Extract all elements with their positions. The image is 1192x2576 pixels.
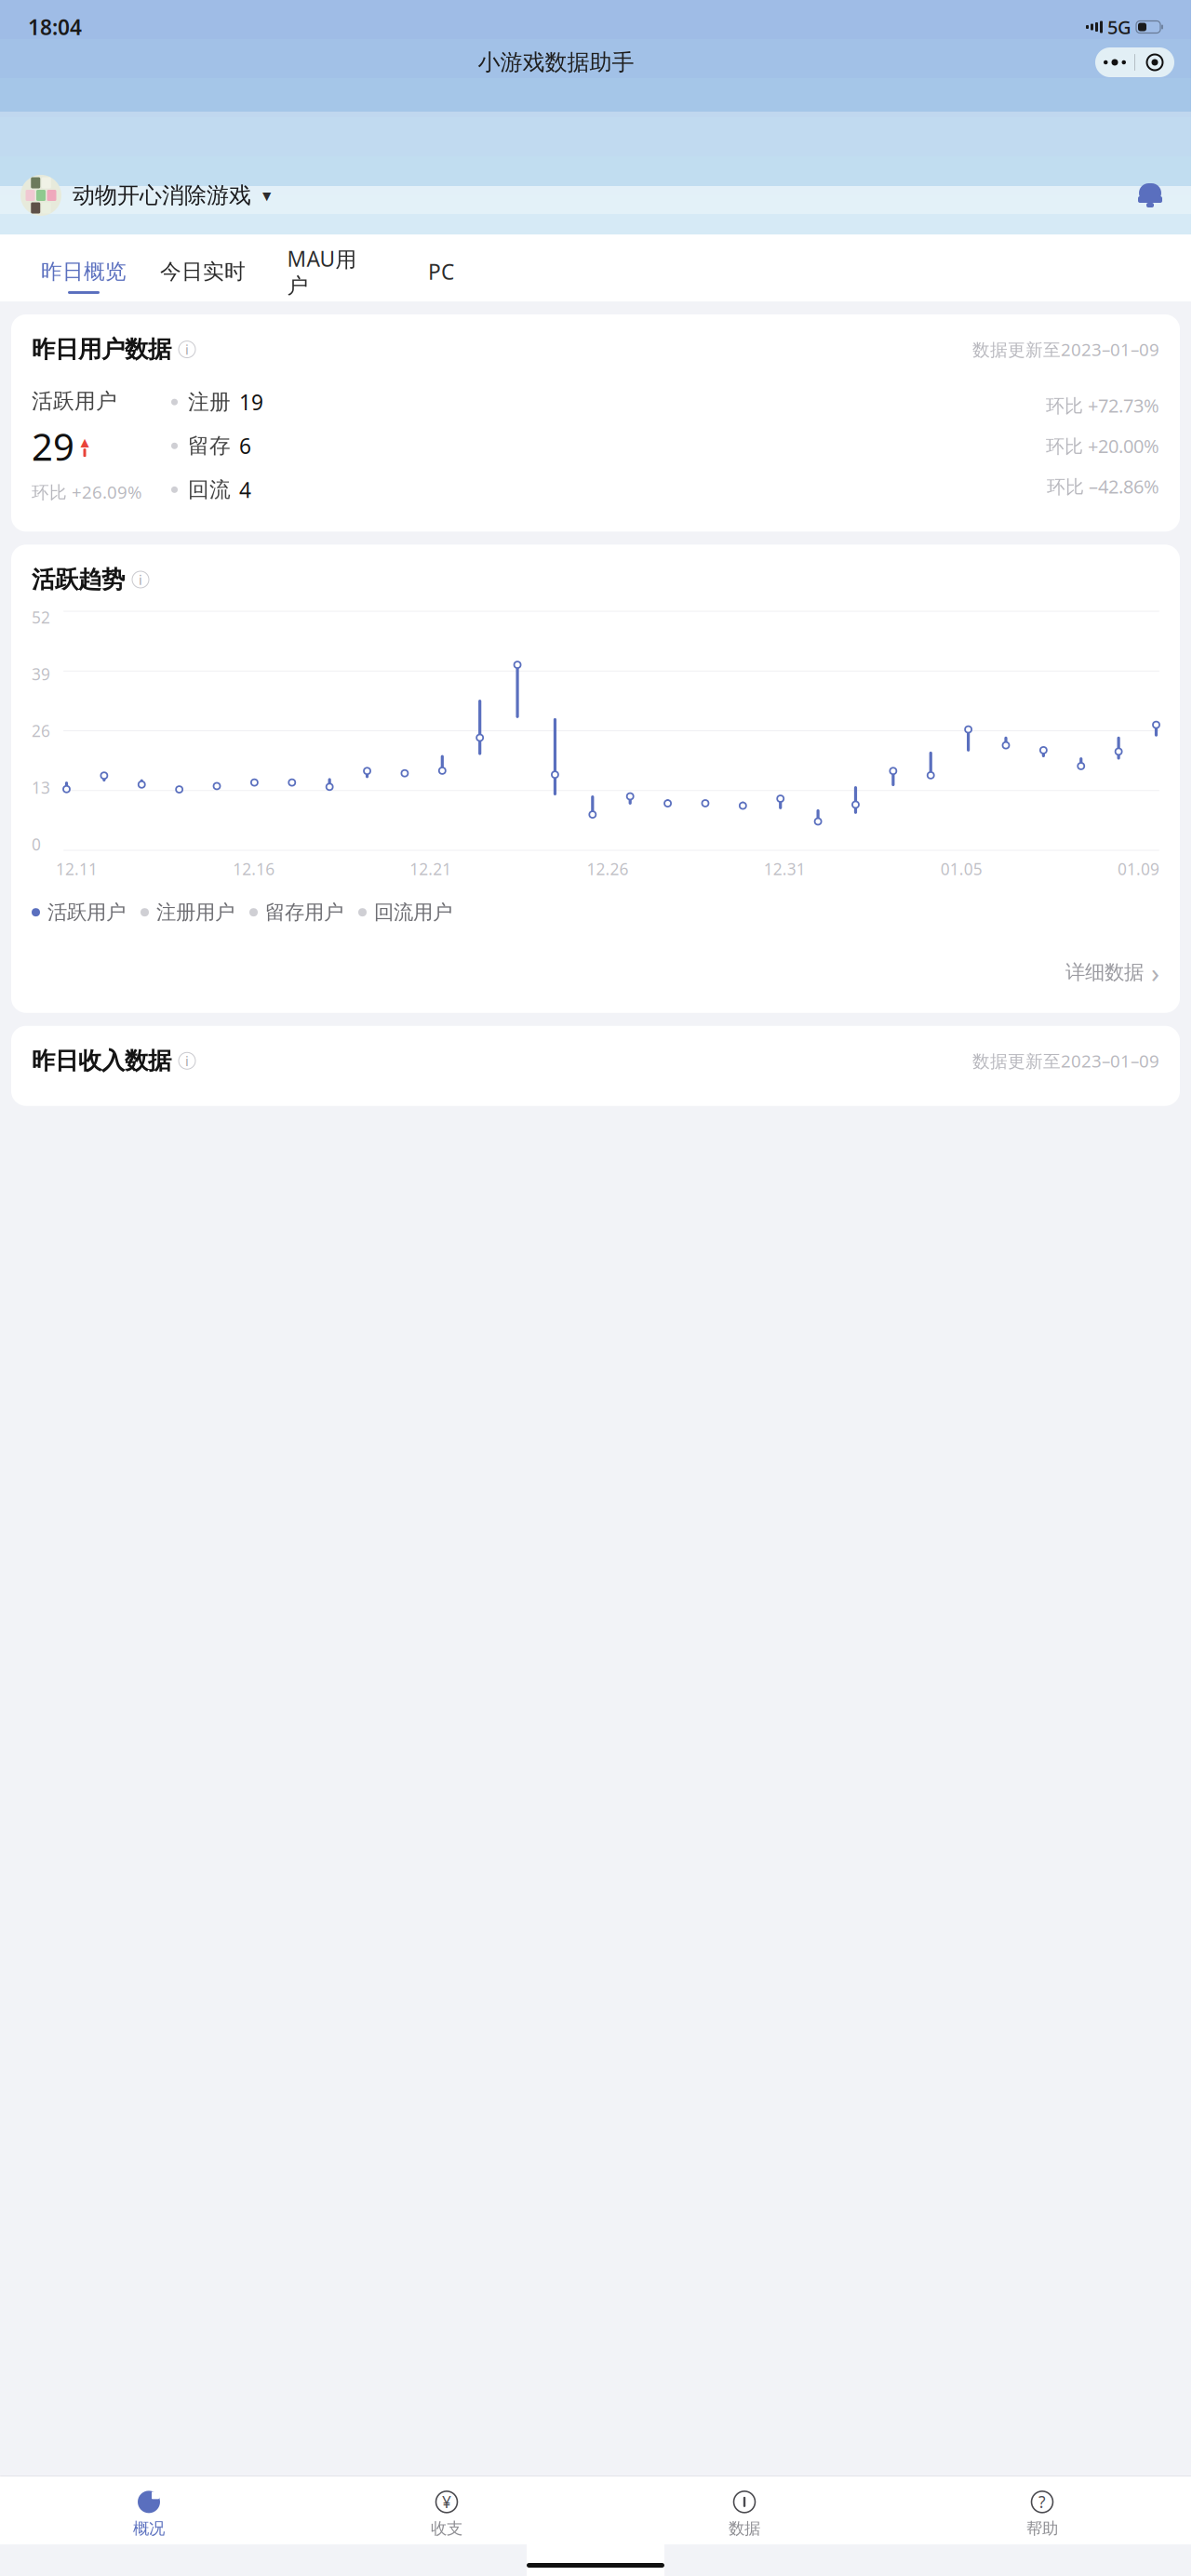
staticText: 注册 — [188, 389, 231, 415]
staticText: ¥ — [442, 2491, 451, 2513]
staticText: 活跃用户 — [47, 900, 126, 925]
button[interactable]: MAU用户 — [262, 245, 382, 308]
button[interactable]: 昨日概览 — [24, 259, 143, 294]
staticText: 12.31 — [764, 858, 806, 880]
staticText: 收支 — [431, 2519, 462, 2539]
staticText: 12.26 — [587, 858, 629, 880]
button[interactable]: 回流用户 — [358, 900, 452, 925]
staticText: 12.16 — [233, 858, 275, 880]
staticText: 环比 +72.73% — [1046, 393, 1159, 418]
button[interactable]: PC — [382, 258, 501, 295]
staticText: i — [185, 1052, 189, 1070]
staticText: 52 — [32, 607, 50, 628]
staticText: 留存用户 — [265, 900, 343, 925]
staticText: 19 — [239, 388, 263, 416]
staticText: 39 — [32, 663, 50, 685]
button[interactable]: 活跃用户 — [32, 900, 126, 925]
staticText: MAU用户 — [287, 245, 357, 299]
button[interactable]: 关闭 — [1135, 47, 1174, 77]
staticText: 环比 +20.00% — [1046, 434, 1159, 458]
button[interactable]: 动物开心消除游戏 — [20, 175, 271, 216]
staticText: i — [185, 340, 189, 358]
staticText: 12.11 — [56, 858, 98, 880]
staticText: 概况 — [133, 2519, 165, 2539]
staticText: 回流用户 — [374, 900, 452, 925]
staticText: ? — [1038, 2491, 1046, 2513]
button[interactable]: 详细数据 — [1065, 945, 1159, 1000]
staticText: 小游戏数据助手 — [478, 49, 634, 76]
staticText: › — [1151, 954, 1159, 991]
button[interactable]: 数据 — [596, 2486, 893, 2542]
staticText: 12.21 — [410, 858, 452, 880]
staticText: 帮助 — [1026, 2519, 1058, 2539]
staticText: 01.09 — [1118, 858, 1159, 880]
staticText: 数据更新至2023–01–09 — [972, 338, 1159, 361]
staticText: 留存 — [188, 433, 231, 459]
button[interactable]: 通知 — [1130, 175, 1171, 216]
staticText: 29 — [32, 422, 74, 471]
button[interactable]: 今日实时 — [143, 259, 262, 294]
staticText: ▾ — [262, 186, 271, 205]
staticText: 26 — [32, 720, 50, 741]
staticText: 动物开心消除游戏 — [73, 182, 251, 209]
staticText: 回流 — [188, 477, 231, 503]
staticText: 活跃趋势 — [32, 565, 125, 594]
staticText: 4 — [239, 476, 251, 504]
staticText: 6 — [239, 432, 251, 460]
staticText: 注册用户 — [156, 900, 234, 925]
staticText: 13 — [32, 777, 50, 798]
button[interactable]: 留存用户 — [249, 900, 343, 925]
staticText: 数据 — [729, 2519, 760, 2539]
staticText: i — [139, 570, 142, 589]
staticText: 环比 +26.09% — [32, 480, 142, 503]
button[interactable]: 更多 — [1095, 47, 1134, 77]
staticText: 昨日收入数据 — [32, 1046, 171, 1075]
staticText: 详细数据 — [1065, 960, 1144, 985]
staticText: 5G — [1107, 15, 1132, 39]
staticText: 0 — [32, 834, 41, 855]
staticText: 活跃用户 — [32, 388, 117, 414]
staticText: 18:04 — [28, 13, 82, 41]
button[interactable]: ¥ — [298, 2486, 596, 2542]
staticText: 01.05 — [941, 858, 982, 880]
staticText: 昨日概览 — [41, 259, 127, 285]
staticText: 环比 –42.86% — [1047, 474, 1159, 499]
staticText: PC — [428, 258, 454, 286]
button[interactable]: ? — [893, 2486, 1191, 2542]
button[interactable]: 概况 — [0, 2486, 298, 2542]
button[interactable]: 注册用户 — [141, 900, 234, 925]
staticText: ▲ — [80, 436, 89, 448]
staticText: 数据更新至2023–01–09 — [972, 1049, 1159, 1072]
staticText: 昨日用户数据 — [32, 335, 171, 364]
staticText: 今日实时 — [160, 259, 246, 285]
